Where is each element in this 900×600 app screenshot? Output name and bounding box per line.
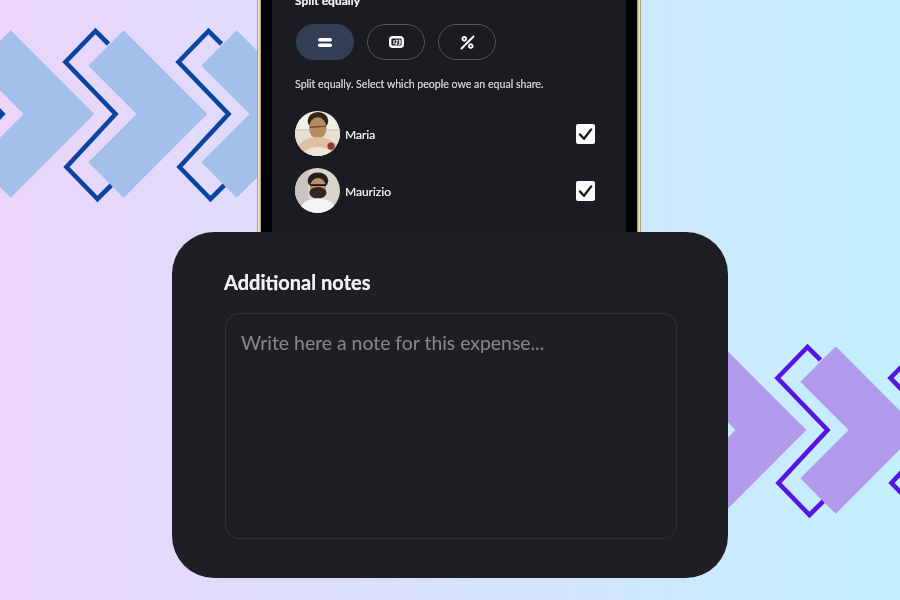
button[interactable]: Maria <box>272 111 626 156</box>
staticText: Maria <box>345 127 376 141</box>
staticText: Split equally <box>295 0 361 7</box>
button[interactable]: Split by amount <box>367 24 425 60</box>
staticText: Additional notes <box>224 270 371 294</box>
button[interactable]: Split equally <box>296 24 354 60</box>
button[interactable]: Maurizio <box>272 168 626 213</box>
button[interactable]: Split by percentage <box>438 24 496 60</box>
staticText: Maurizio <box>345 184 391 198</box>
staticText: Write here a note for this expense... <box>241 331 545 354</box>
button[interactable]: Write here a note for this expense... <box>225 313 677 539</box>
staticText: Split equally. Select which people owe a… <box>295 78 544 91</box>
